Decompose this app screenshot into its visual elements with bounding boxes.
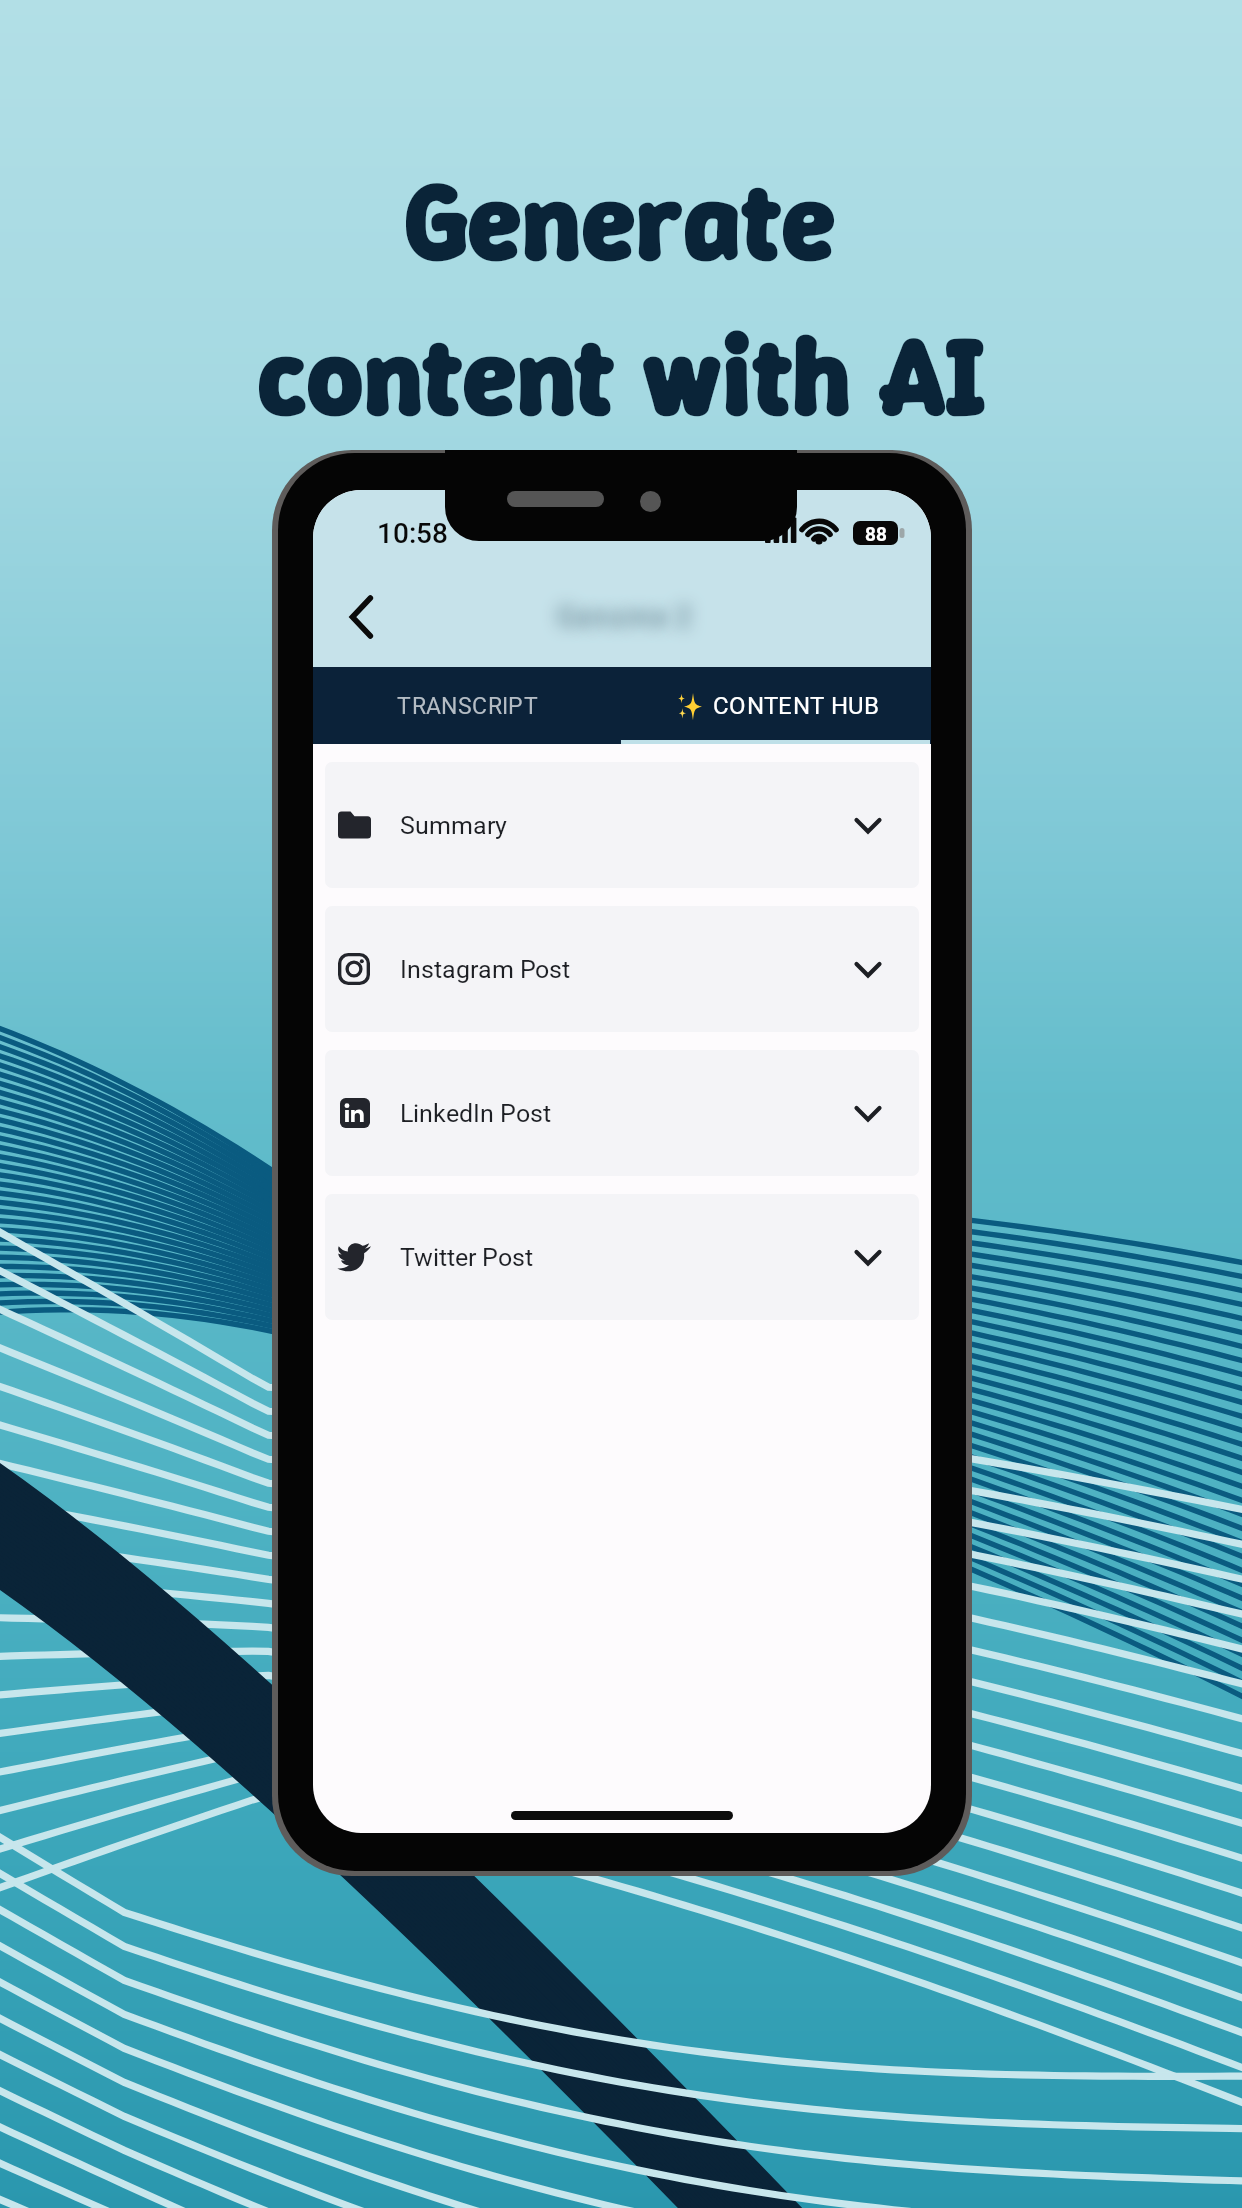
button[interactable]: Back — [329, 587, 389, 647]
button[interactable] — [325, 1194, 919, 1320]
button[interactable] — [313, 667, 622, 744]
button[interactable] — [622, 667, 931, 744]
button[interactable] — [325, 762, 919, 888]
button[interactable] — [325, 906, 919, 1032]
button[interactable] — [325, 1050, 919, 1176]
